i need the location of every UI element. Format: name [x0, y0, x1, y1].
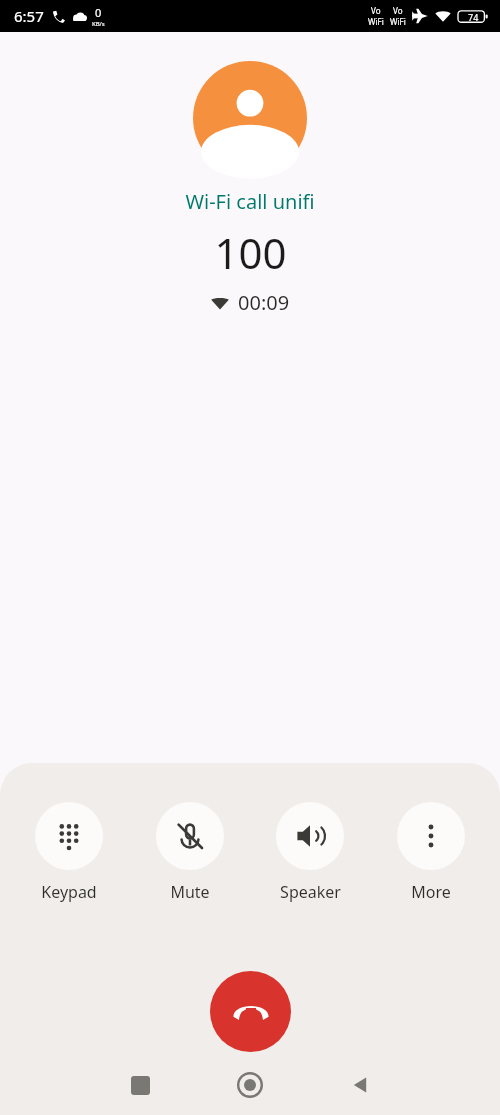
button[interactable]: Keypad — [17, 802, 121, 903]
staticText: Wi-Fi call unifi — [185, 188, 315, 215]
button[interactable]: Recents — [85, 1055, 195, 1115]
staticText: KB/s — [92, 20, 105, 28]
staticText: Vo — [371, 5, 381, 16]
button[interactable]: End call — [210, 971, 291, 1052]
staticText: WiFi — [390, 16, 406, 27]
staticText: Speaker — [280, 881, 341, 903]
staticText: Vo — [393, 5, 403, 16]
button[interactable]: Back — [305, 1055, 415, 1115]
staticText: 00:09 — [238, 289, 290, 316]
button[interactable]: Speaker — [258, 802, 362, 903]
staticText: 100 — [214, 224, 287, 281]
staticText: 74 — [468, 11, 479, 23]
staticText: More — [411, 881, 451, 903]
button[interactable]: Mute — [138, 802, 242, 903]
staticText: WiFi — [368, 16, 384, 27]
button[interactable]: Home — [195, 1055, 305, 1115]
staticText: 6:57 — [14, 6, 44, 26]
staticText: 0 — [95, 5, 102, 20]
staticText: Keypad — [41, 881, 97, 903]
button[interactable]: More — [379, 802, 483, 903]
staticText: Mute — [170, 881, 210, 903]
